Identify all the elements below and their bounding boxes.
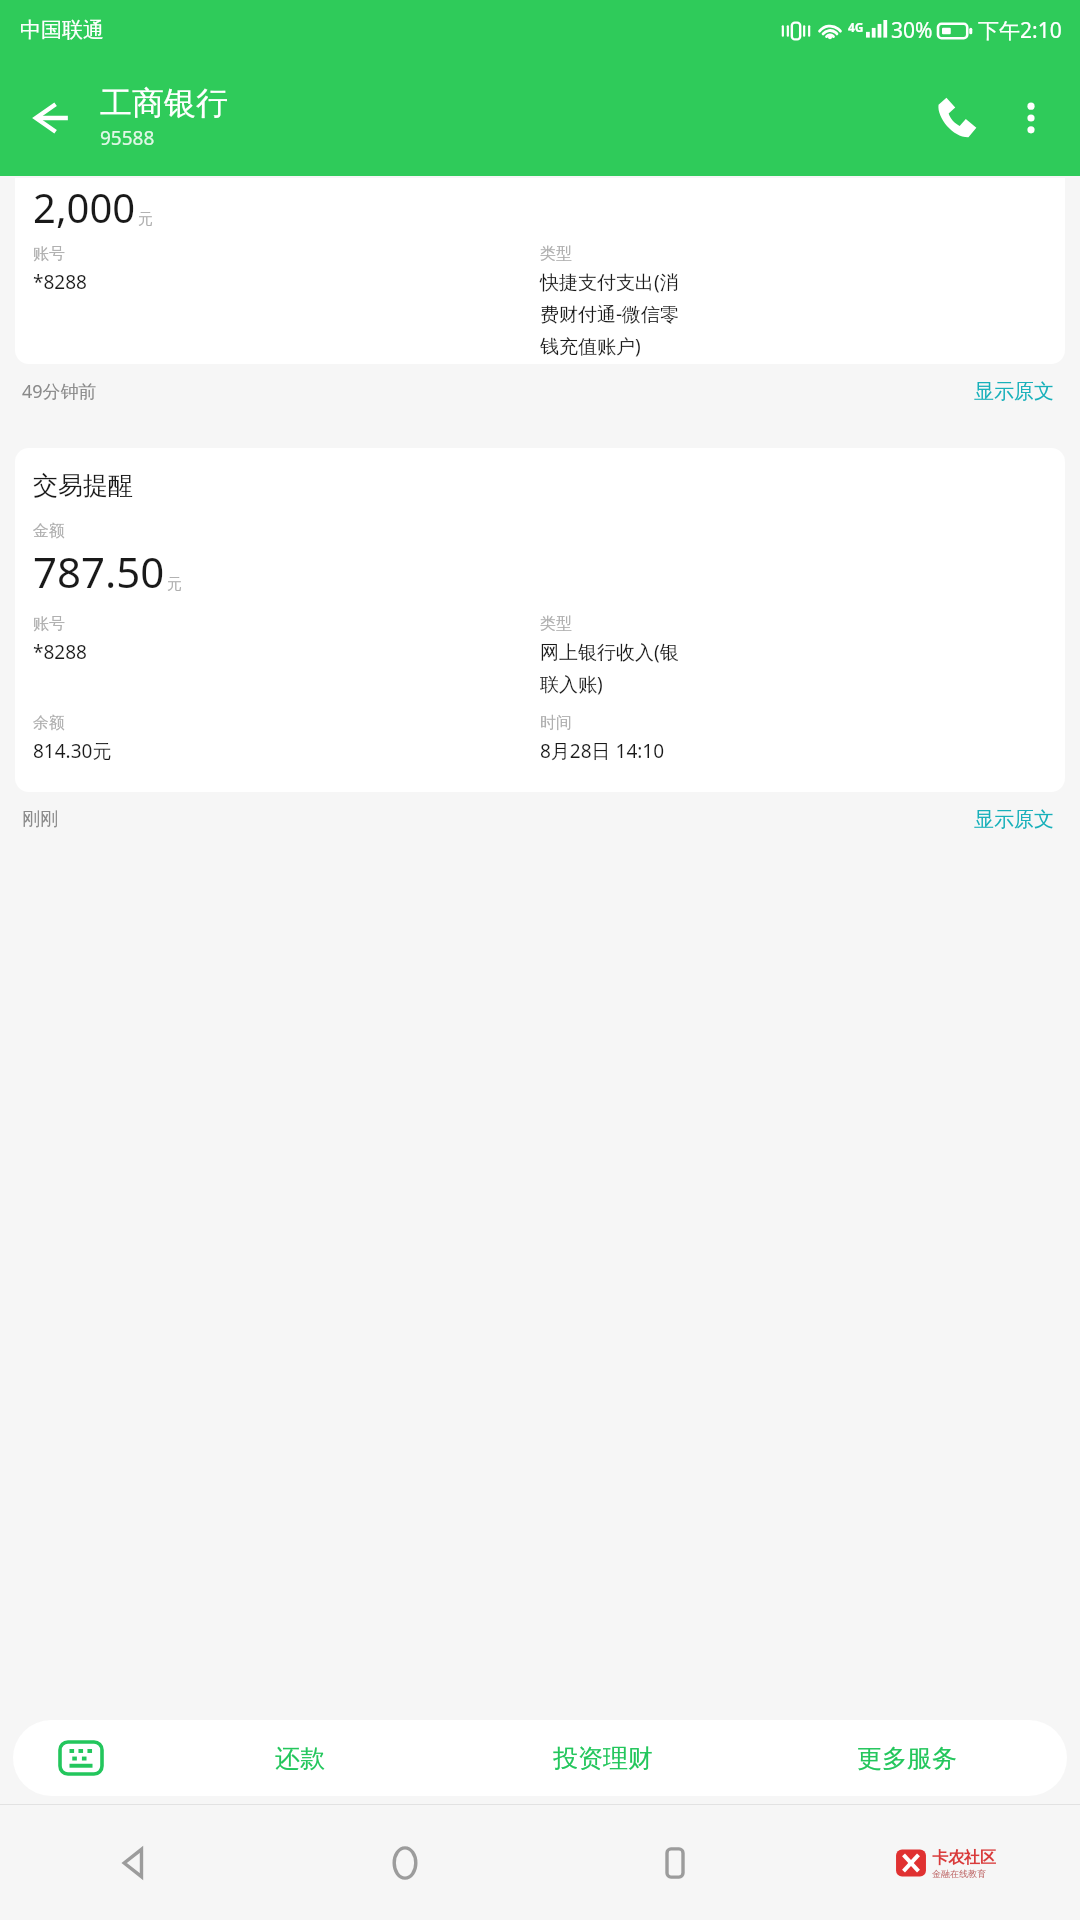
- button[interactable]: 显示原文: [970, 801, 1058, 838]
- staticText: 网上银行收入(银 联入账): [540, 639, 679, 697]
- staticText: 49分钟前: [22, 379, 97, 404]
- button[interactable]: 投资理财: [451, 1720, 755, 1796]
- staticText: 元: [167, 575, 182, 594]
- button[interactable]: Back: [0, 1805, 270, 1920]
- staticText: 显示原文: [974, 379, 1054, 404]
- button[interactable]: Back: [18, 86, 82, 150]
- staticText: 更多服务: [857, 1743, 957, 1774]
- staticText: 显示原文: [974, 807, 1054, 832]
- staticText: 30%: [891, 16, 933, 45]
- staticText: 787.50: [33, 543, 165, 600]
- staticText: 账号: [33, 244, 65, 264]
- staticText: *8288: [33, 269, 87, 295]
- staticText: 金额: [33, 521, 65, 541]
- staticText: 工商银行: [100, 83, 228, 123]
- staticText: 2,000: [33, 180, 136, 234]
- staticText: 刚刚: [22, 808, 58, 831]
- button[interactable]: 还款: [148, 1720, 451, 1796]
- staticText: 还款: [275, 1743, 325, 1774]
- button[interactable]: 2,000: [15, 178, 1065, 364]
- button[interactable]: Keyboard: [13, 1720, 148, 1796]
- staticText: 投资理财: [553, 1743, 653, 1774]
- staticText: 元: [138, 210, 153, 229]
- staticText: 下午2:10: [978, 16, 1062, 45]
- staticText: 8月28日 14:10: [540, 738, 665, 764]
- staticText: 时间: [540, 713, 572, 733]
- button[interactable]: 交易提醒: [15, 448, 1065, 792]
- staticText: 金融在线教育: [932, 1868, 986, 1879]
- staticText: 快捷支付支出(消 费财付通-微信零 钱充值账户): [540, 269, 680, 359]
- button[interactable]: 更多服务: [755, 1720, 1059, 1796]
- staticText: 卡农社区: [932, 1848, 996, 1868]
- staticText: 814.30元: [33, 738, 112, 764]
- button[interactable]: Call: [918, 79, 996, 157]
- staticText: 账号: [33, 614, 65, 634]
- staticText: 中国联通: [20, 17, 104, 43]
- button[interactable]: More options: [996, 83, 1066, 153]
- staticText: 交易提醒: [33, 470, 133, 501]
- button[interactable]: Recents: [540, 1805, 810, 1920]
- button[interactable]: Home: [270, 1805, 540, 1920]
- staticText: 余额: [33, 713, 65, 733]
- button[interactable]: 显示原文: [970, 373, 1058, 410]
- staticText: 类型: [540, 244, 572, 264]
- staticText: 4G: [848, 19, 864, 35]
- staticText: 95588: [100, 125, 155, 151]
- staticText: 类型: [540, 614, 572, 634]
- staticText: *8288: [33, 639, 87, 665]
